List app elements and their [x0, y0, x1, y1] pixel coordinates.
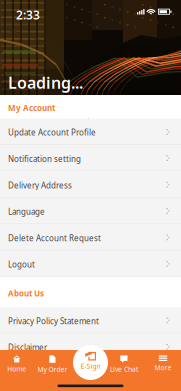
staticText: Language	[8, 206, 45, 217]
staticText: About Us	[8, 288, 44, 299]
button[interactable]: Delivery Address	[0, 171, 181, 198]
button[interactable]: Language	[0, 198, 181, 224]
staticText: My Order	[37, 365, 67, 374]
button[interactable]: Disclaimer	[0, 334, 181, 360]
staticText: Logout	[8, 259, 35, 270]
staticText: Home	[7, 365, 26, 373]
button[interactable]: Privacy Policy Statement	[0, 307, 181, 334]
staticText: Privacy Policy Statement	[8, 316, 99, 326]
button[interactable]: My Order	[34, 350, 70, 391]
staticText: 2:33	[16, 7, 40, 23]
staticText: More	[154, 363, 171, 372]
button[interactable]: Notification setting	[0, 145, 181, 171]
button[interactable]: Live Chat	[106, 350, 142, 391]
button[interactable]: More	[145, 350, 181, 391]
staticText: Loading...	[8, 72, 83, 93]
staticText: Delivery Address	[8, 180, 72, 191]
staticText: Live Chat	[110, 365, 138, 374]
staticText: Delete Account Request	[8, 233, 101, 243]
staticText: Notification setting	[8, 154, 81, 164]
button[interactable]: Update Account Profile	[0, 119, 181, 145]
button[interactable]: Home	[0, 350, 35, 391]
button[interactable]: Logout	[0, 251, 181, 277]
button[interactable]: E-Sign	[73, 345, 108, 380]
button[interactable]: Delete Account Request	[0, 224, 181, 251]
staticText: Disclaimer	[8, 342, 47, 353]
staticText: Update Account Profile	[8, 127, 96, 138]
staticText: My Account	[8, 103, 55, 113]
staticText: E-Sign	[80, 362, 100, 371]
